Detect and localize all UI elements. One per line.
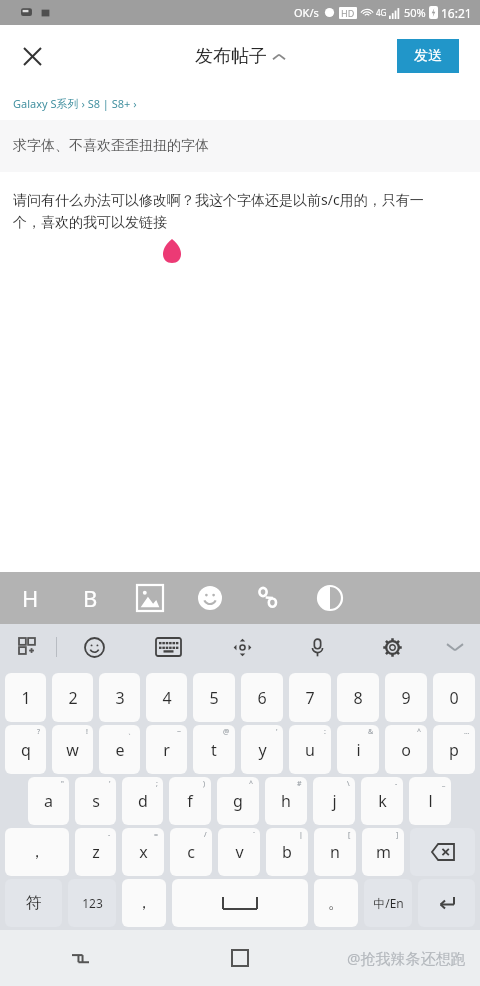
button[interactable]: Delete bbox=[410, 828, 475, 876]
button[interactable]: p bbox=[433, 725, 475, 774]
button[interactable]: r bbox=[146, 725, 187, 774]
button[interactable]: o bbox=[385, 725, 427, 774]
button[interactable]: 发送 bbox=[397, 39, 459, 73]
button[interactable]: Move cursor bbox=[205, 624, 280, 670]
staticText: y bbox=[258, 739, 267, 761]
staticText: 16:21 bbox=[441, 5, 472, 21]
button[interactable]: Space bbox=[172, 879, 308, 927]
button[interactable]: t bbox=[193, 725, 235, 774]
button[interactable]: d bbox=[122, 777, 163, 825]
button[interactable]: 123 bbox=[68, 879, 116, 927]
button[interactable]: Home bbox=[160, 930, 320, 986]
button[interactable]: 中/En bbox=[364, 879, 412, 927]
button[interactable]: 2 bbox=[52, 673, 93, 722]
button[interactable]: 6 bbox=[241, 673, 283, 722]
staticText: 5 bbox=[209, 687, 219, 709]
button[interactable]: h bbox=[265, 777, 307, 825]
staticText: H bbox=[22, 583, 39, 613]
button[interactable]: Keyboard layout bbox=[131, 624, 205, 670]
button[interactable]: 0 bbox=[433, 673, 475, 722]
button[interactable]: 5 bbox=[193, 673, 235, 722]
button[interactable]: 8 bbox=[337, 673, 379, 722]
staticText: Galaxy S系列 › S8 | S8+ › bbox=[13, 96, 137, 111]
staticText: 1 bbox=[21, 687, 31, 709]
button[interactable]: s bbox=[75, 777, 116, 825]
button[interactable]: Insert image bbox=[120, 572, 180, 624]
button[interactable]: Settings bbox=[355, 624, 430, 670]
button[interactable]: Recents bbox=[0, 930, 160, 986]
staticText: f bbox=[187, 790, 193, 812]
button[interactable]: j bbox=[313, 777, 355, 825]
button[interactable]: a bbox=[28, 777, 69, 825]
staticText: ? bbox=[37, 727, 41, 737]
staticText: v bbox=[235, 841, 244, 863]
button[interactable]: Voice input bbox=[280, 624, 355, 670]
button[interactable]: u bbox=[289, 725, 331, 774]
staticText: ; bbox=[156, 779, 158, 789]
staticText: 9 bbox=[401, 687, 411, 709]
button[interactable]: Toolbox bbox=[0, 624, 56, 670]
staticText: h bbox=[281, 790, 291, 812]
staticText: z bbox=[92, 841, 100, 863]
staticText: ) bbox=[203, 779, 206, 789]
button[interactable]: Galaxy S系列 › S8 | S8+ › bbox=[13, 87, 480, 120]
button[interactable]: x bbox=[122, 828, 164, 876]
button[interactable]: f bbox=[169, 777, 211, 825]
button[interactable]: Emoji bbox=[57, 624, 131, 670]
button[interactable]: k bbox=[361, 777, 403, 825]
button[interactable]: Hide keyboard bbox=[430, 624, 480, 670]
staticText: p bbox=[449, 739, 459, 761]
button[interactable]: ， bbox=[122, 879, 166, 927]
button[interactable]: w bbox=[52, 725, 93, 774]
button[interactable]: Bold bbox=[60, 572, 120, 624]
staticText: # bbox=[297, 779, 302, 789]
staticText: B bbox=[83, 583, 98, 613]
button[interactable]: y bbox=[241, 725, 283, 774]
button[interactable]: Back bbox=[320, 930, 480, 986]
staticText: @ bbox=[223, 727, 230, 737]
button[interactable]: b bbox=[266, 828, 308, 876]
button[interactable]: Heading bbox=[0, 572, 60, 624]
button[interactable]: 求字体、不喜欢歪歪扭扭的字体 bbox=[13, 120, 480, 172]
button[interactable]: 1 bbox=[5, 673, 46, 722]
staticText: u bbox=[305, 739, 315, 761]
button[interactable]: 9 bbox=[385, 673, 427, 722]
button[interactable]: g bbox=[217, 777, 259, 825]
button[interactable]: i bbox=[337, 725, 379, 774]
staticText: / bbox=[204, 830, 207, 840]
staticText: ! bbox=[86, 727, 88, 737]
staticText: ， bbox=[136, 893, 152, 913]
staticText: - bbox=[108, 830, 111, 840]
staticText: o bbox=[401, 739, 411, 761]
staticText: j bbox=[332, 790, 337, 812]
button[interactable]: 4 bbox=[146, 673, 187, 722]
button[interactable]: z bbox=[75, 828, 116, 876]
button[interactable]: Emoji bbox=[180, 572, 240, 624]
button[interactable]: 符 bbox=[5, 879, 62, 927]
button[interactable]: 发布帖子 bbox=[195, 45, 285, 68]
staticText: 2 bbox=[68, 687, 78, 709]
staticText: ' bbox=[109, 779, 111, 789]
button[interactable]: Close bbox=[10, 34, 54, 78]
staticText: HD bbox=[341, 7, 355, 19]
staticText: 3 bbox=[115, 687, 125, 709]
button[interactable]: n bbox=[314, 828, 356, 876]
button[interactable]: m bbox=[362, 828, 404, 876]
button[interactable]: 3 bbox=[99, 673, 140, 722]
button[interactable]: Enter bbox=[418, 879, 475, 927]
staticText: 符 bbox=[26, 893, 42, 913]
button[interactable]: e bbox=[99, 725, 140, 774]
staticText: i bbox=[356, 739, 361, 761]
button[interactable]: c bbox=[170, 828, 212, 876]
button[interactable]: l bbox=[409, 777, 451, 825]
button[interactable]: v bbox=[218, 828, 260, 876]
button[interactable]: 7 bbox=[289, 673, 331, 722]
button[interactable]: ， bbox=[5, 828, 69, 876]
staticText: 123 bbox=[82, 895, 103, 911]
button[interactable]: Insert link bbox=[240, 572, 300, 624]
staticText: r bbox=[163, 739, 170, 761]
staticText: t bbox=[211, 739, 217, 761]
button[interactable]: Contrast bbox=[300, 572, 360, 624]
button[interactable]: q bbox=[5, 725, 46, 774]
button[interactable]: 。 bbox=[314, 879, 358, 927]
